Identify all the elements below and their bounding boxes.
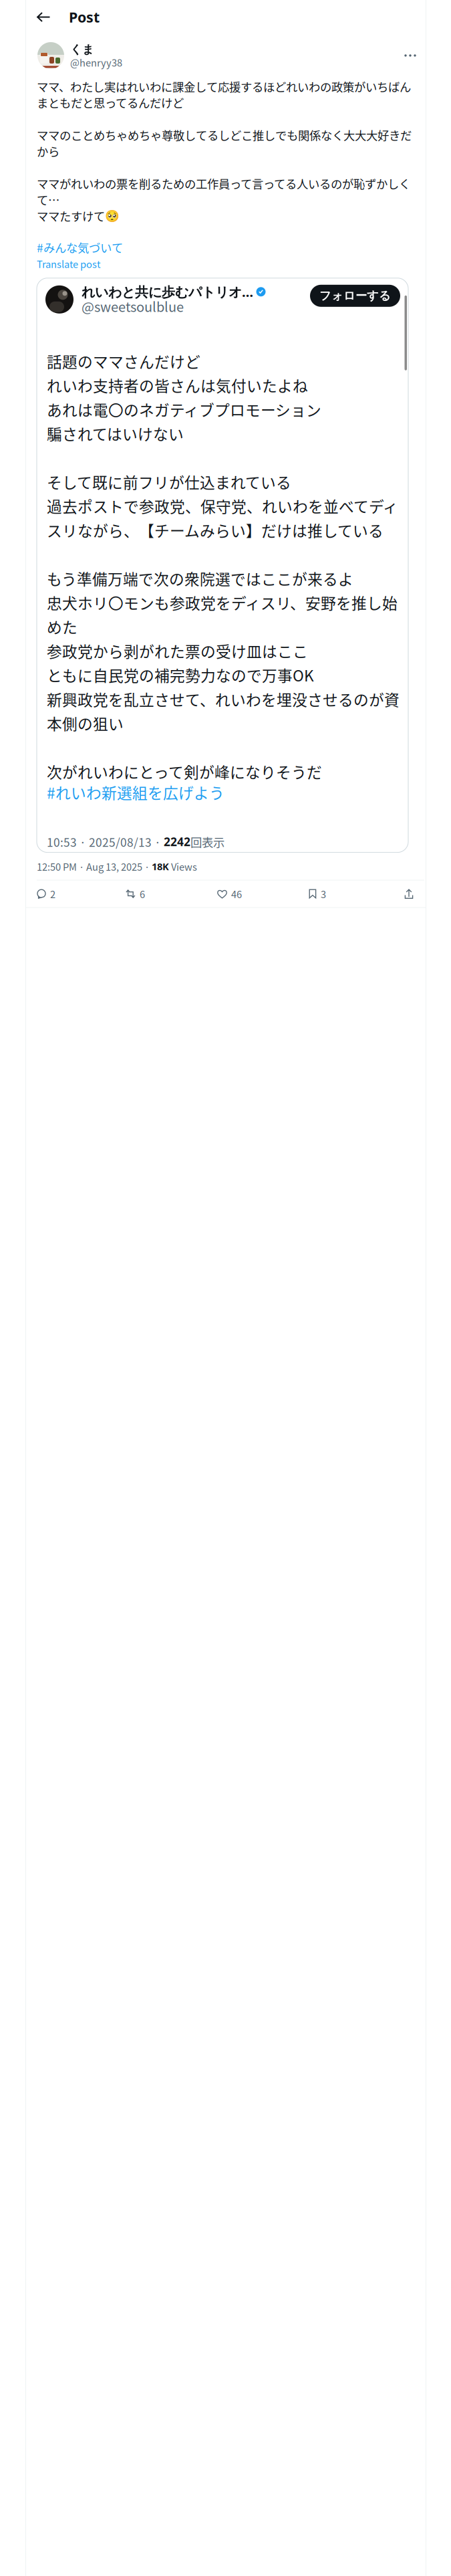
button[interactable]: #れいわ新選組を広げよう <box>47 783 224 801</box>
staticText: くま <box>70 42 94 57</box>
staticText: そして既に前フリが仕込まれている <box>47 471 291 493</box>
button[interactable]: More <box>399 44 422 67</box>
button[interactable]: 2 <box>37 885 126 903</box>
staticText: ママのことめちゃめちゃ尊敬してるしどこ推しでも関係なく大大大好きだ <box>37 127 412 143</box>
staticText: 2242 <box>164 834 190 850</box>
button[interactable]: 3 <box>309 885 400 903</box>
staticText: Views <box>169 859 197 874</box>
staticText: ママがれいわの票を削るための工作員って言ってる人いるのが恥ずかしく <box>37 175 410 192</box>
staticText: 話題のママさんだけど <box>47 350 200 372</box>
staticText: れいわ支持者の皆さんは気付いたよね <box>47 374 308 396</box>
staticText: 6 <box>140 887 145 901</box>
staticText: 新興政党を乱立させて、れいわを埋没させるのが資 <box>47 688 400 710</box>
button[interactable]: フォローする <box>310 285 400 307</box>
staticText: 46 <box>231 887 242 901</box>
staticText: 本側の狙い <box>47 712 124 734</box>
button[interactable]: Post <box>69 7 100 27</box>
staticText: あれは電〇のネガティブプロモーション <box>47 398 321 420</box>
button[interactable]: #みんな気づいて <box>37 240 123 255</box>
staticText: めた <box>47 616 78 638</box>
staticText: 10:53 · 2025/08/13 · <box>47 833 164 850</box>
staticText: 回表示 <box>190 833 224 850</box>
staticText: 過去ポストで参政党、保守党、れいわを並べてディ <box>47 495 398 517</box>
button[interactable]: 6 <box>126 885 217 903</box>
staticText: @henryy38 <box>70 55 122 69</box>
staticText: 忠犬ホリ〇モンも参政党をディスリ、安野を推し始 <box>47 591 398 613</box>
staticText: から <box>37 143 59 159</box>
staticText: て… <box>37 191 59 208</box>
button[interactable]: 46 <box>217 885 309 903</box>
staticText: Translate post <box>37 257 101 271</box>
staticText: 18K <box>152 860 169 873</box>
staticText: れいわと共に歩むパトリオ… <box>82 283 253 301</box>
button[interactable]: Back <box>32 6 55 28</box>
staticText: 騙されてはいけない <box>47 422 184 444</box>
staticText: 2 <box>50 887 55 901</box>
staticText: スリながら、【チームみらい】だけは推している <box>47 519 384 541</box>
button[interactable]: Profile photo <box>37 42 64 69</box>
staticText: Post <box>69 7 100 27</box>
staticText: #れいわ新選組を広げよう <box>47 781 224 803</box>
staticText: @sweetsoulblue <box>82 296 184 316</box>
staticText: 3 <box>321 887 326 901</box>
button[interactable]: Share <box>400 885 418 903</box>
staticText: もう準備万端で次の衆院選ではここが来るよ <box>47 567 353 589</box>
staticText: #みんな気づいて <box>37 239 123 256</box>
staticText: 12:50 PM · Aug 13, 2025 · <box>37 859 152 874</box>
staticText: 参政党から剥がれた票の受け皿はここ <box>47 640 308 662</box>
staticText: ともに自民党の補完勢力なので万事OK <box>47 664 314 686</box>
staticText: フォローする <box>319 288 391 303</box>
staticText: ママたすけて🥺 <box>37 207 120 224</box>
button[interactable]: Translate post <box>37 258 101 269</box>
staticText: ママ、わたし実はれいわに課金して応援するほどれいわの政策がいちばん <box>37 78 411 95</box>
staticText: まともだと思ってるんだけど <box>37 94 184 111</box>
staticText: 次がれいわにとって剣が峰になりそうだ <box>47 760 322 782</box>
